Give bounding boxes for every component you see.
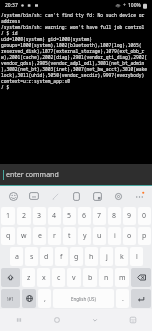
button[interactable]: v [67, 268, 81, 287]
staticText: z [27, 273, 31, 283]
button[interactable]: Change language [22, 289, 36, 308]
button[interactable]: 1 [1, 207, 15, 225]
button[interactable]: f [55, 247, 68, 266]
button[interactable]: d [40, 247, 53, 266]
button[interactable]: c [52, 268, 65, 287]
button[interactable]: x [37, 268, 50, 287]
staticText: a [15, 252, 19, 262]
button[interactable]: Stickers [26, 188, 42, 204]
button[interactable]: Back [76, 309, 114, 331]
staticText: x [42, 273, 46, 283]
button[interactable]: s [25, 247, 38, 266]
staticText: k [120, 252, 124, 262]
staticText: e [38, 231, 42, 241]
button[interactable]: . [116, 289, 129, 308]
button[interactable]: /system/bin/sh: can't find tty fd: No su… [0, 11, 152, 164]
staticText: l [136, 252, 138, 262]
staticText: s [30, 252, 34, 262]
staticText: . [122, 294, 124, 304]
button[interactable]: t [63, 227, 76, 245]
staticText: vendor_qdss),2905(vendor_adpl_odl),3001(… [1, 60, 152, 66]
staticText: /system/bin/sh: warning: won't have full… [1, 24, 152, 30]
staticText: n [104, 273, 109, 283]
button[interactable]: Hide keyboard [114, 309, 152, 331]
button[interactable]: z [22, 268, 35, 287]
staticText: w [21, 231, 27, 241]
button[interactable]: j [100, 247, 113, 266]
staticText: j [106, 252, 108, 262]
button[interactable]: Keyboard mode [89, 188, 105, 204]
button[interactable]: , [38, 289, 51, 308]
button[interactable]: i [108, 227, 121, 245]
staticText: 7 [97, 211, 102, 221]
button[interactable]: p [138, 227, 151, 245]
button[interactable]: u [93, 227, 106, 245]
staticText: 20:37 [5, 2, 18, 9]
button[interactable]: 0 [138, 207, 151, 225]
button[interactable]: 3 [33, 207, 46, 225]
staticText: 3 [37, 211, 42, 221]
button[interactable]: Emoji [5, 188, 21, 204]
staticText: b [88, 273, 93, 283]
staticText: i [114, 231, 116, 241]
button[interactable]: Translate [47, 188, 63, 204]
button[interactable]: 9 [123, 207, 136, 225]
button[interactable]: enter command [0, 164, 152, 186]
staticText: y [83, 231, 87, 241]
staticText: r [53, 231, 56, 241]
staticText: 4 [52, 211, 57, 221]
staticText: g [74, 252, 79, 262]
button[interactable]: 6 [78, 207, 91, 225]
button[interactable]: y [78, 227, 91, 245]
staticText: / $ id [1, 30, 152, 36]
staticText: uid=1000(system) gid=1000(system) [1, 36, 152, 42]
staticText: groups=1000(system),1002(bluetooth),1007… [1, 42, 152, 48]
staticText: + [123, 2, 126, 9]
staticText: q [6, 231, 11, 241]
button[interactable]: Shift [1, 268, 20, 287]
staticText: 1 [6, 211, 11, 221]
button[interactable]: o [123, 227, 136, 245]
button[interactable]: Clipboard [68, 188, 84, 204]
button[interactable]: h [85, 247, 98, 266]
button[interactable]: Home [38, 309, 76, 331]
staticText: 0 [142, 211, 147, 221]
staticText: f [60, 252, 63, 262]
staticText: o [127, 231, 132, 241]
button[interactable]: Recents [0, 309, 38, 331]
staticText: d [44, 252, 49, 262]
button[interactable]: k [115, 247, 128, 266]
staticText: h [89, 252, 94, 262]
button[interactable]: r [48, 227, 61, 245]
staticText: / $ [1, 84, 152, 90]
button[interactable]: More options [131, 188, 147, 204]
staticText: m [119, 273, 126, 283]
button[interactable]: 4 [48, 207, 61, 225]
button[interactable]: m [115, 268, 129, 287]
button[interactable]: e [33, 227, 46, 245]
staticText: /system/bin/sh: can't find tty fd: No su… [1, 12, 152, 18]
button[interactable]: n [99, 268, 113, 287]
button[interactable]: Enter [131, 289, 151, 308]
button[interactable]: q [1, 227, 15, 245]
button[interactable]: !#1 [1, 289, 20, 308]
button[interactable]: b [83, 268, 97, 287]
button[interactable]: Backspace [131, 268, 151, 287]
button[interactable]: g [70, 247, 83, 266]
button[interactable]: l [130, 247, 143, 266]
staticText: w),2001(cache),2002(diag),2901(vendor_qt… [1, 54, 152, 60]
staticText: 100% [128, 2, 141, 9]
button[interactable]: 7 [93, 207, 106, 225]
button[interactable]: 2 [17, 207, 31, 225]
button[interactable]: a [10, 247, 23, 266]
staticText: English (US) [71, 296, 96, 302]
button[interactable]: 8 [108, 207, 121, 225]
staticText: 6 [82, 211, 87, 221]
button[interactable]: Settings [110, 188, 126, 204]
button[interactable]: English (US) [53, 289, 114, 308]
staticText: 5 [67, 211, 72, 221]
button[interactable]: w [17, 227, 31, 245]
staticText: 2 [22, 211, 27, 221]
button[interactable]: 5 [63, 207, 76, 225]
staticText: !#1 [7, 296, 14, 302]
